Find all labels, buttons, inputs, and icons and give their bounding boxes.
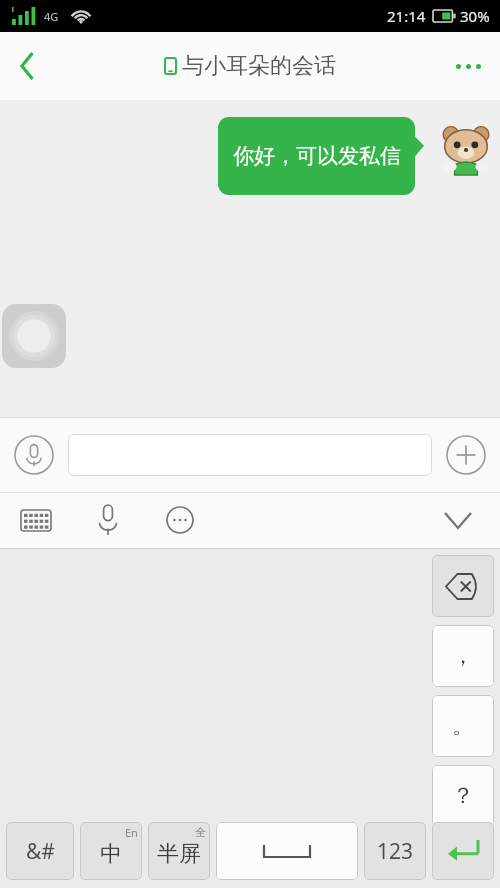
staticText: 半屏 xyxy=(157,840,201,868)
button[interactable]: 中 xyxy=(80,822,142,880)
staticText: 21:14 xyxy=(387,6,426,26)
staticText: 。 xyxy=(452,712,474,740)
staticText: &# xyxy=(26,837,55,866)
staticText: 你好，可以发私信 xyxy=(233,143,401,169)
button[interactable]: 123 xyxy=(364,822,426,880)
button[interactable]: ？ xyxy=(432,765,494,827)
button[interactable]: Keyboard xyxy=(14,498,58,542)
button[interactable]: More options xyxy=(436,32,500,100)
button[interactable]: Add attachment xyxy=(446,435,486,475)
button[interactable]: 。 xyxy=(432,695,494,757)
button[interactable]: Microphone xyxy=(86,498,130,542)
button[interactable]: Enter xyxy=(432,822,494,880)
button[interactable]: 半屏 xyxy=(148,822,210,880)
button[interactable]: Voice input xyxy=(14,435,54,475)
button[interactable]: 你好，可以发私信 xyxy=(218,117,423,195)
button[interactable]: Hide keyboard xyxy=(434,496,482,544)
button[interactable]: &# xyxy=(6,822,74,880)
staticText: 123 xyxy=(377,837,414,866)
staticText: 中 xyxy=(100,840,122,868)
staticText: ， xyxy=(452,642,474,670)
staticText: 全 xyxy=(195,825,206,839)
staticText: 30% xyxy=(460,6,490,26)
button[interactable]: Space xyxy=(216,822,358,880)
button[interactable]: ， xyxy=(432,625,494,687)
staticText: 与小耳朵的会话 xyxy=(182,52,336,80)
button[interactable]: More input options xyxy=(158,498,202,542)
button[interactable]: Back xyxy=(0,32,56,100)
staticText: ？ xyxy=(452,782,474,810)
button[interactable]: Backspace xyxy=(432,555,494,617)
staticText: En xyxy=(125,825,138,840)
staticText: 4G xyxy=(44,9,59,24)
button[interactable] xyxy=(68,434,432,476)
